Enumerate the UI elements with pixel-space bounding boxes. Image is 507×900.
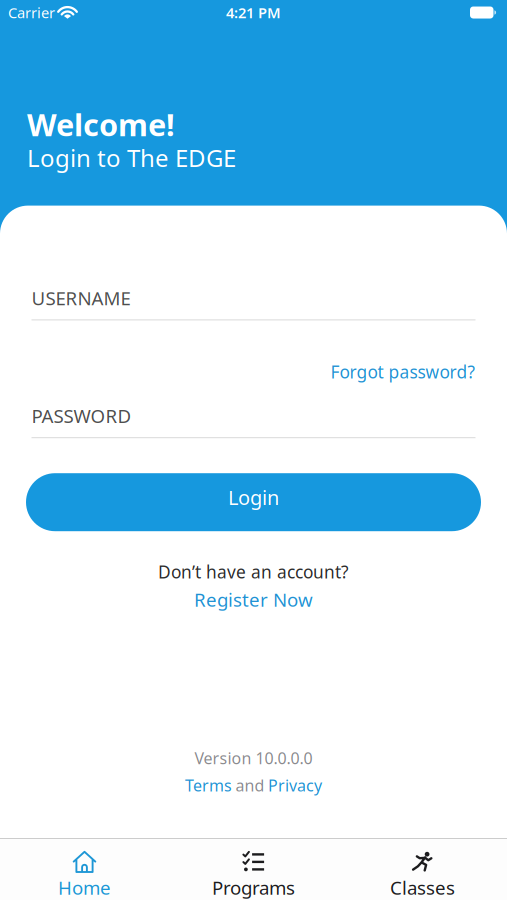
staticText: Home <box>58 875 111 900</box>
staticText: Terms <box>185 775 232 796</box>
staticText: Programs <box>212 875 295 900</box>
staticText: and <box>235 775 264 796</box>
button[interactable]: Login <box>26 473 481 531</box>
staticText: Privacy <box>268 775 322 796</box>
staticText: Welcome! <box>27 104 175 145</box>
staticText: Forgot password? <box>330 360 475 383</box>
staticText: Login <box>228 484 279 510</box>
button[interactable]: Register Now <box>194 587 313 612</box>
staticText: USERNAME <box>31 286 130 310</box>
staticText: PASSWORD <box>31 403 131 428</box>
button[interactable]: PASSWORD <box>31 403 475 438</box>
button[interactable]: Home <box>0 850 169 900</box>
button[interactable]: Privacy <box>268 775 322 796</box>
staticText: Carrier <box>8 3 55 22</box>
staticText: 4:21 PM <box>226 3 281 22</box>
staticText: Login to The EDGE <box>27 142 236 174</box>
staticText: Version 10.0.0.0 <box>194 747 312 769</box>
staticText: Classes <box>390 875 455 900</box>
button[interactable]: Forgot password? <box>330 360 475 383</box>
button[interactable]: Classes <box>338 850 507 900</box>
button[interactable]: USERNAME <box>31 286 475 320</box>
button[interactable]: Programs <box>169 850 338 900</box>
staticText: Don’t have an account? <box>158 560 349 583</box>
button[interactable]: Terms <box>185 775 232 796</box>
staticText: Register Now <box>194 587 313 612</box>
